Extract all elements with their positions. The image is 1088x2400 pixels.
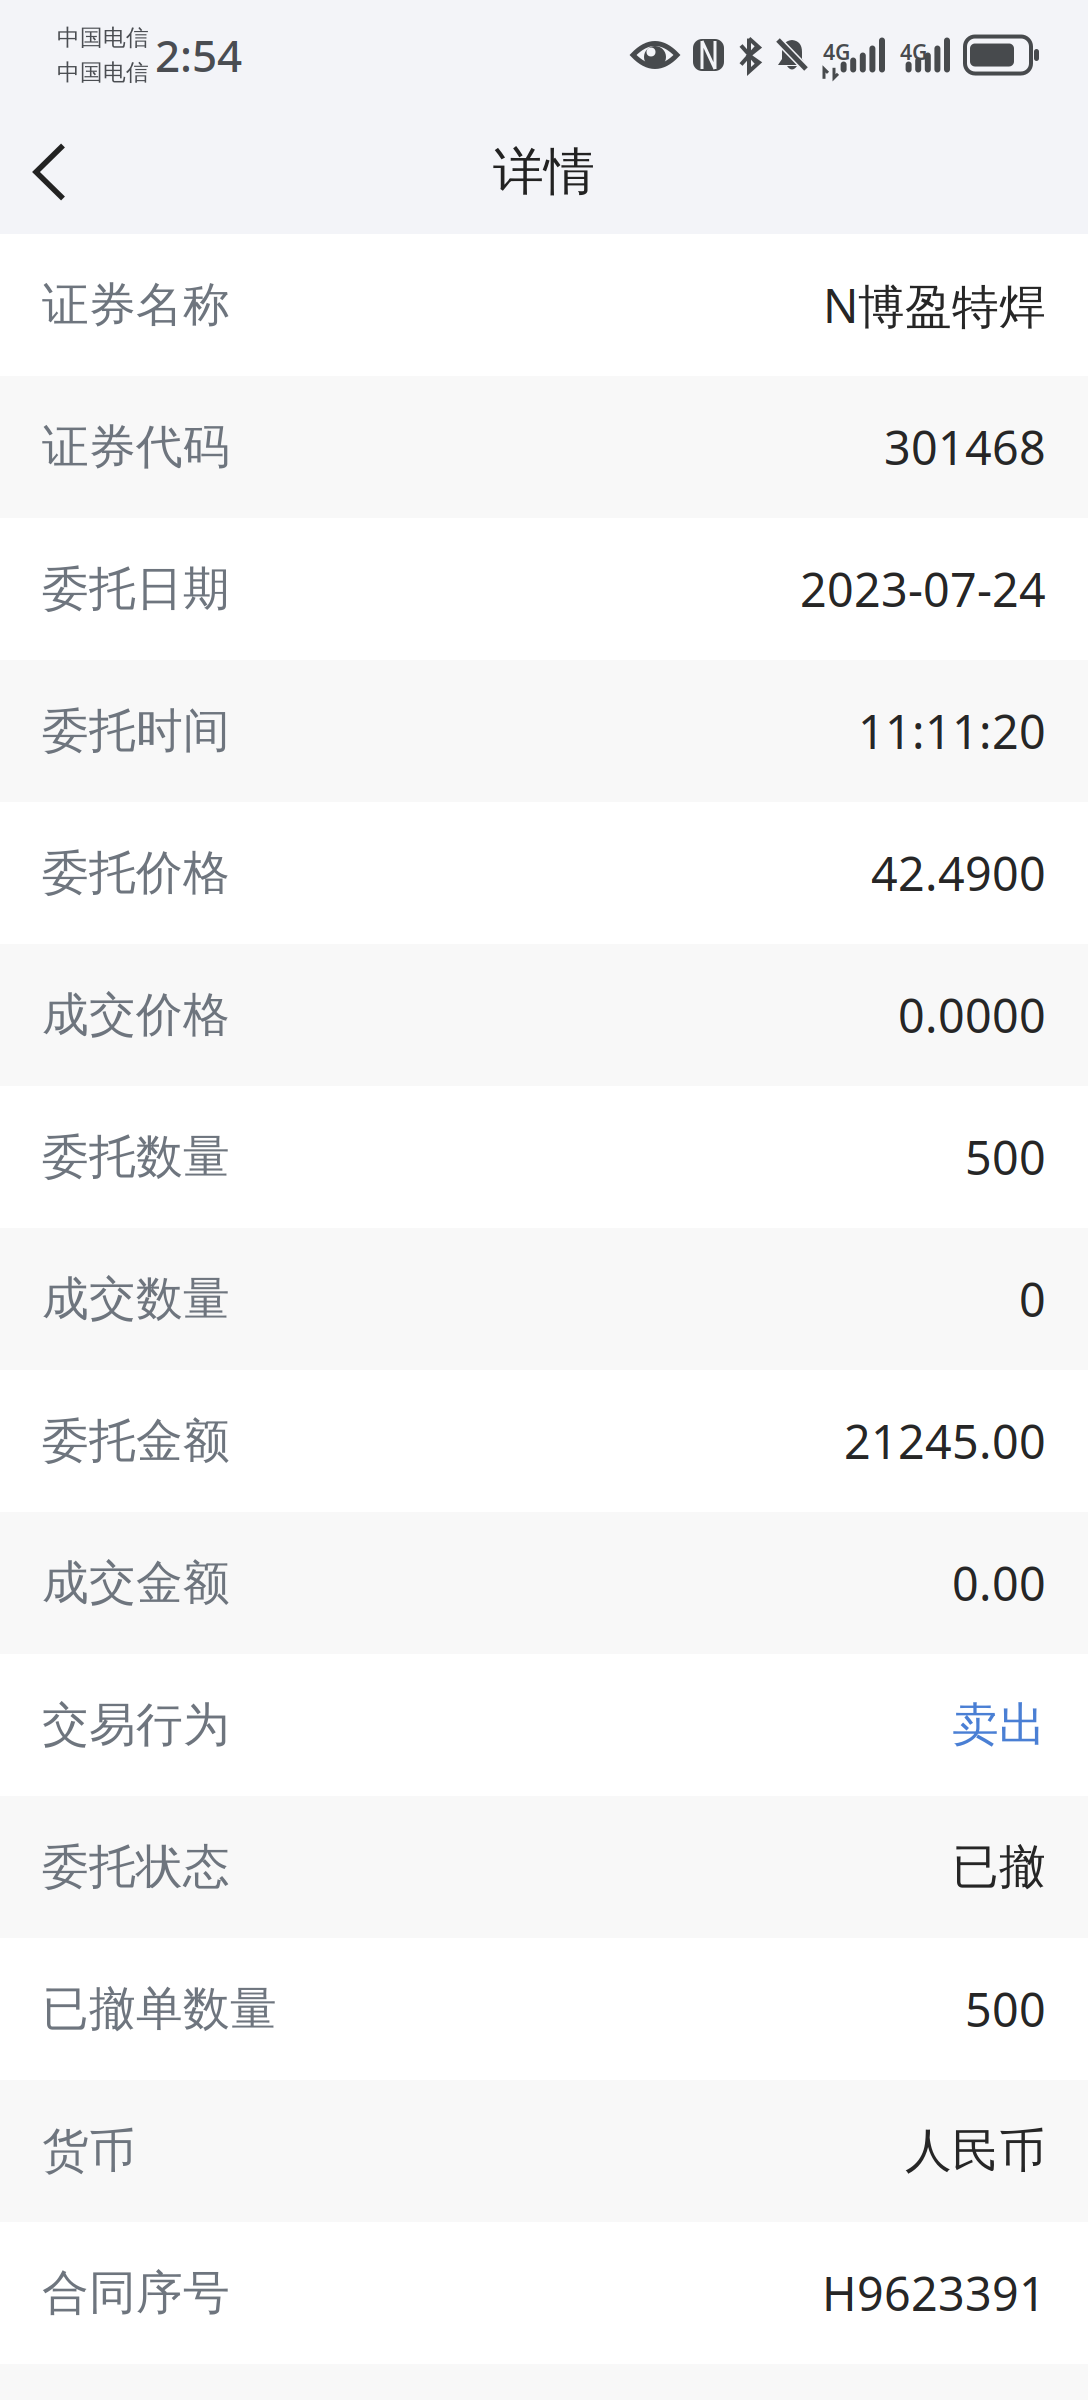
staticText: 2:54 bbox=[155, 26, 242, 84]
staticText: 0 bbox=[1019, 1268, 1046, 1330]
staticText: 42.4900 bbox=[871, 842, 1046, 904]
staticText: 证券名称 bbox=[42, 276, 230, 334]
staticText: 委托时间 bbox=[42, 702, 230, 760]
staticText: 已撤 bbox=[952, 1838, 1046, 1896]
staticText: 委托价格 bbox=[42, 844, 230, 902]
staticText: 301468 bbox=[884, 416, 1046, 478]
staticText: 中国电信 bbox=[57, 58, 149, 86]
staticText: 中国电信 bbox=[57, 24, 149, 51]
staticText: 交易行为 bbox=[42, 1696, 230, 1754]
staticText: 成交金额 bbox=[42, 1554, 230, 1612]
staticText: H9623391 bbox=[822, 2262, 1046, 2324]
staticText: 500 bbox=[965, 1126, 1046, 1188]
staticText: 成交数量 bbox=[42, 1270, 230, 1328]
staticText: 4G bbox=[900, 37, 927, 66]
staticText: 2023-07-24 bbox=[800, 558, 1046, 620]
staticText: 人民币 bbox=[905, 2122, 1046, 2180]
staticText: 委托日期 bbox=[42, 560, 230, 618]
staticText: 委托金额 bbox=[42, 1412, 230, 1470]
staticText: 0.00 bbox=[952, 1552, 1046, 1614]
staticText: 成交价格 bbox=[42, 986, 230, 1044]
staticText: 21245.00 bbox=[844, 1410, 1046, 1472]
staticText: 4G bbox=[823, 37, 850, 66]
staticText: 证券代码 bbox=[42, 418, 230, 476]
staticText: 500 bbox=[965, 1978, 1046, 2040]
staticText: 合同序号 bbox=[42, 2264, 230, 2322]
staticText: 委托状态 bbox=[42, 1838, 230, 1896]
staticText: 详情 bbox=[493, 141, 595, 203]
button[interactable]: 返回 bbox=[0, 110, 98, 234]
staticText: 货币 bbox=[42, 2122, 136, 2180]
staticText: N博盈特焊 bbox=[823, 274, 1046, 336]
staticText: 已撤单数量 bbox=[42, 1980, 277, 2038]
staticText: 11:11:20 bbox=[858, 700, 1046, 762]
staticText: 卖出 bbox=[952, 1696, 1046, 1754]
staticText: 0.0000 bbox=[898, 984, 1046, 1046]
staticText: 委托数量 bbox=[42, 1128, 230, 1186]
